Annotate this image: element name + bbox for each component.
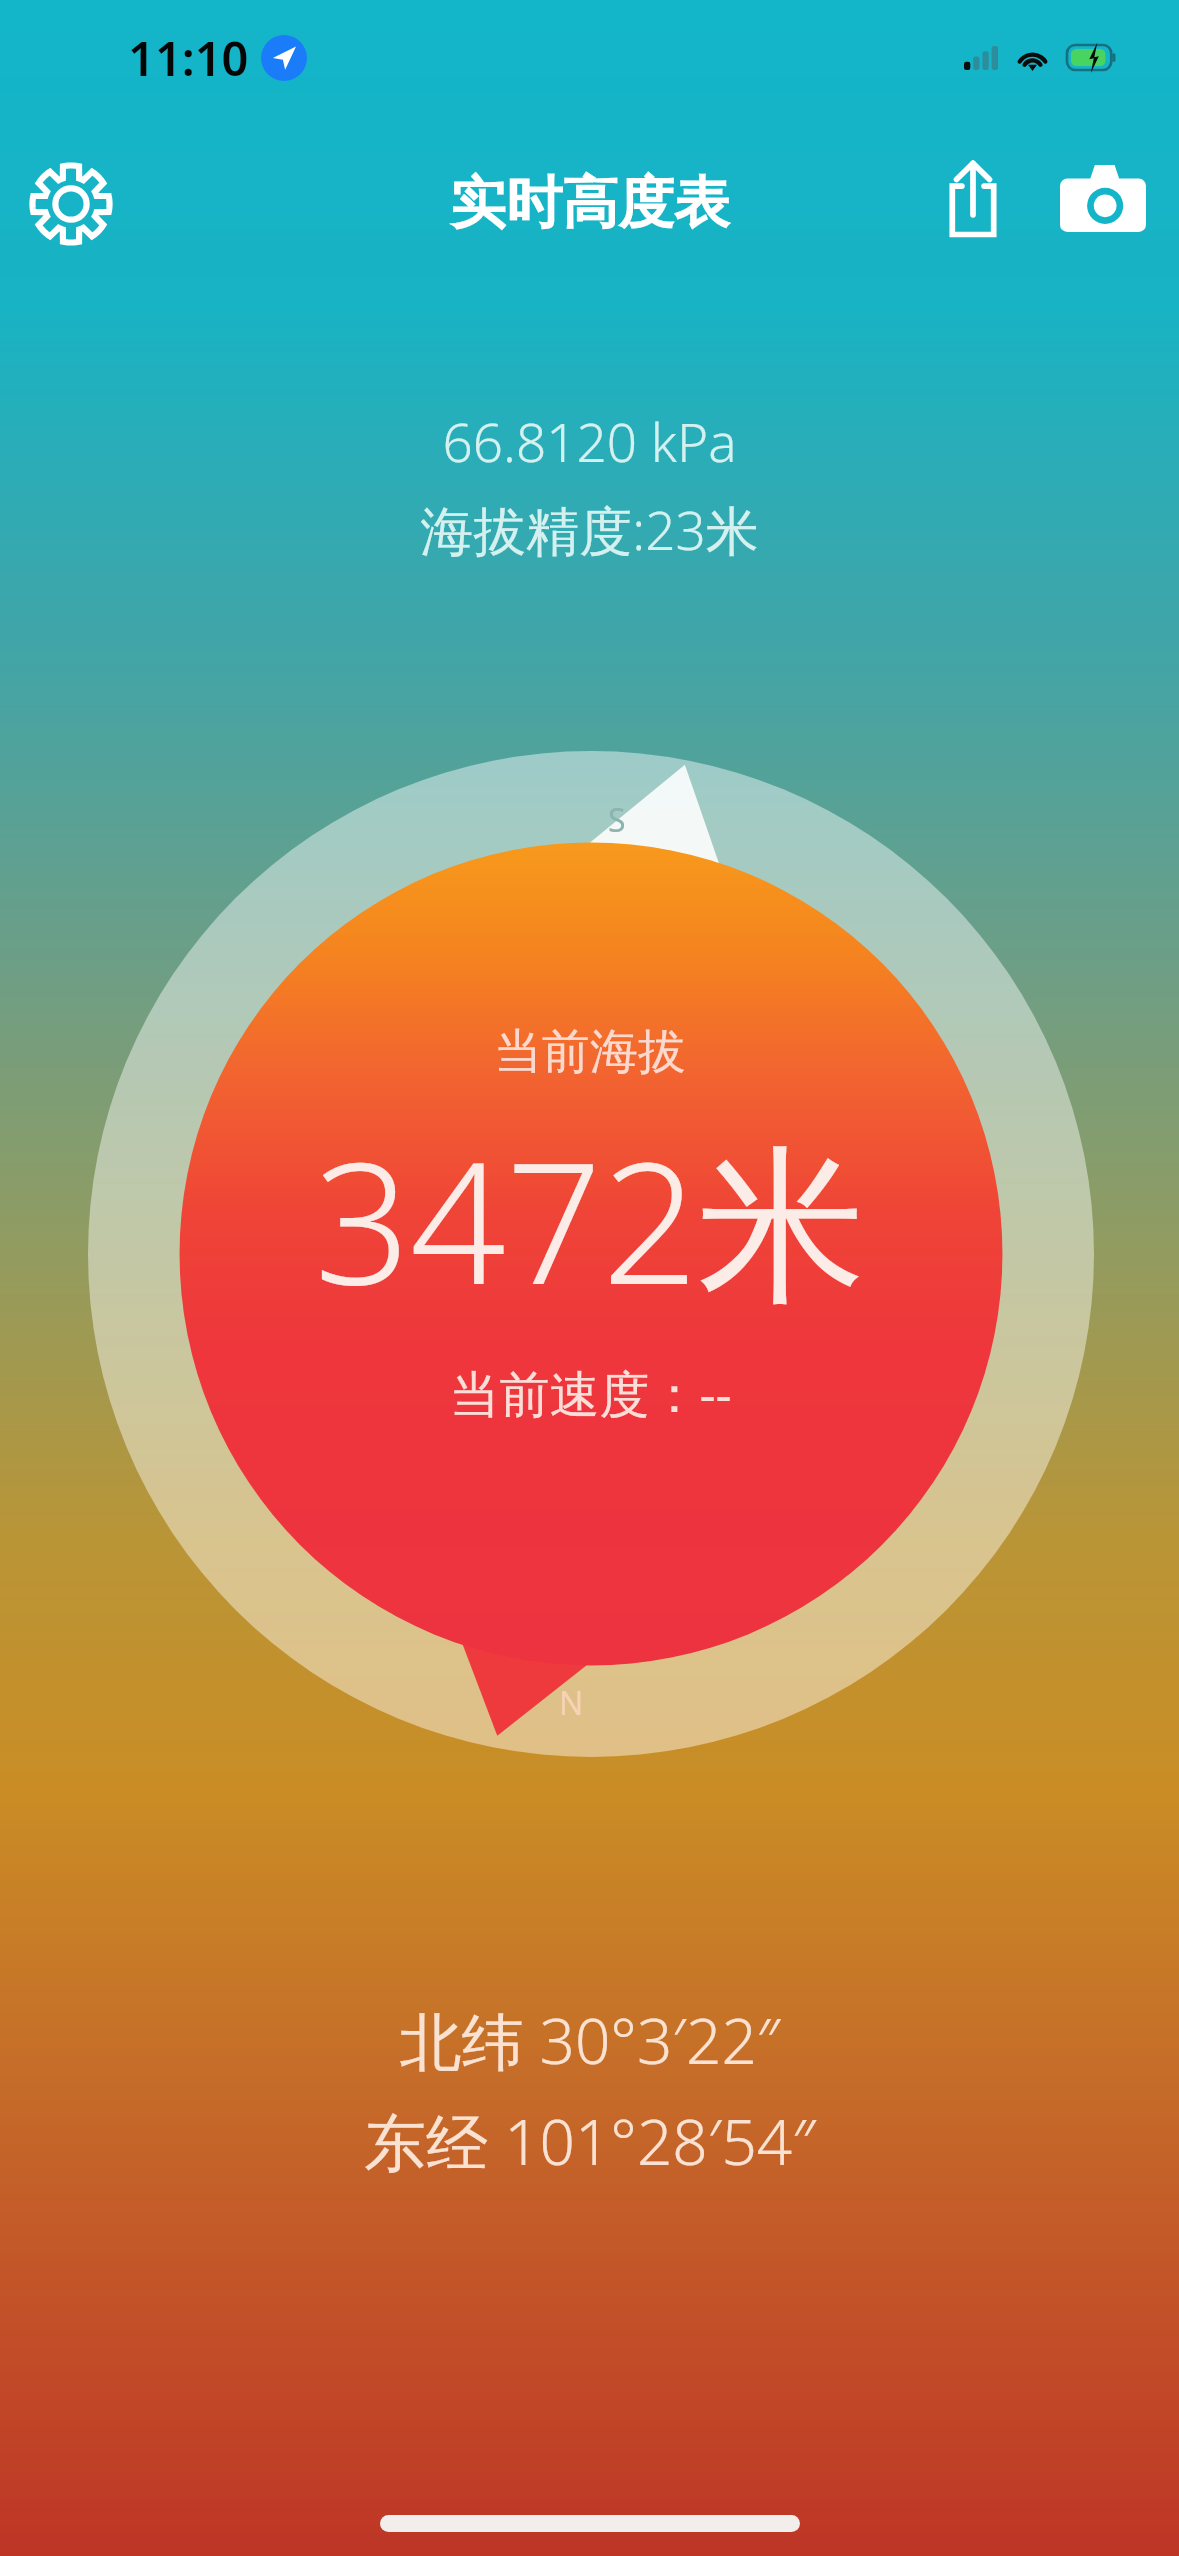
staticText: N <box>559 1681 584 1725</box>
staticText: S <box>608 798 626 842</box>
staticText: 66.8120 kPa <box>442 405 737 477</box>
staticText: 东经 101°28′54″ <box>364 2099 816 2184</box>
staticText: 当前速度：-- <box>449 1359 732 1427</box>
button[interactable]: Settings <box>15 148 127 260</box>
button[interactable]: Camera <box>1047 142 1159 254</box>
button[interactable]: Share <box>917 142 1029 254</box>
staticText: 11:10 <box>128 26 249 90</box>
staticText: 实时高度表 <box>450 168 730 239</box>
staticText: 北纬 30°3′22″ <box>399 1998 781 2083</box>
staticText: 海拔精度:23米 <box>420 493 759 565</box>
staticText: 3472米 <box>314 1104 866 1333</box>
staticText: 当前海拔 <box>494 1022 686 1082</box>
